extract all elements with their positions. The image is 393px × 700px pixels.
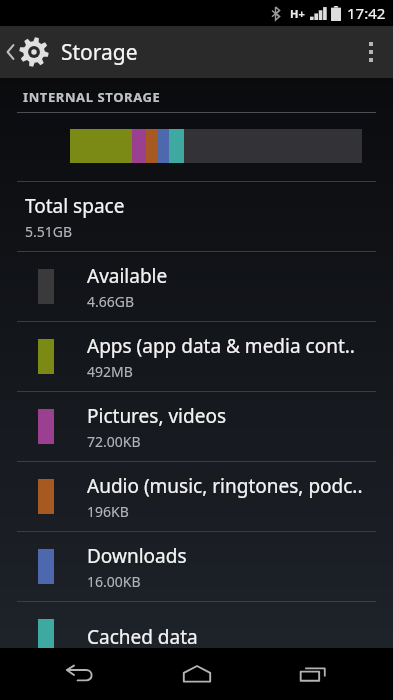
staticText: Apps (app data & media cont.. — [87, 333, 355, 359]
staticText: Downloads — [87, 543, 187, 569]
staticText: 492MB — [87, 362, 133, 381]
staticText: INTERNAL STORAGE — [23, 88, 161, 106]
staticText: 17:42 — [347, 3, 386, 23]
button[interactable]: More options — [349, 26, 393, 78]
staticText: Storage — [61, 38, 138, 67]
staticText: Available — [87, 263, 168, 289]
staticText: Pictures, videos — [87, 403, 226, 429]
button[interactable]: Home — [161, 648, 233, 700]
staticText: 4.66GB — [87, 292, 135, 311]
staticText: Cached data — [87, 624, 198, 650]
button[interactable]: Recent apps — [277, 648, 349, 700]
staticText: Audio (music, ringtones, podc.. — [87, 473, 363, 499]
button[interactable]: Pictures, videos — [0, 392, 393, 461]
staticText: H+ — [290, 6, 305, 21]
button[interactable]: Total space — [0, 182, 393, 251]
button[interactable]: Back — [44, 648, 116, 700]
staticText: Total space — [25, 193, 125, 219]
staticText: 16.00KB — [87, 572, 141, 591]
staticText: 5.51GB — [25, 222, 73, 241]
staticText: 72.00KB — [87, 432, 141, 451]
staticText: 196KB — [87, 502, 129, 521]
button[interactable]: Downloads — [0, 532, 393, 601]
button[interactable]: Cached data — [0, 602, 393, 671]
button[interactable]: Navigate up, Storage — [0, 26, 148, 78]
button[interactable]: Audio (music, ringtones, podc.. — [0, 462, 393, 531]
button[interactable]: Apps (app data & media cont.. — [0, 322, 393, 391]
button[interactable]: Available — [0, 252, 393, 321]
